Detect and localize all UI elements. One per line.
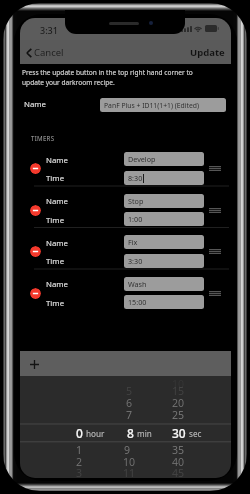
- staticText: Name: [46, 279, 68, 290]
- staticText: 6: [126, 396, 133, 410]
- staticText: 45: [172, 466, 185, 478]
- staticText: 5: [126, 384, 133, 398]
- button[interactable]: Delete Fix: [30, 246, 41, 257]
- button[interactable]: Cancel: [22, 43, 72, 62]
- staticText: min: [137, 428, 152, 439]
- staticText: Develop: [128, 154, 156, 164]
- staticText: 15:00: [128, 297, 147, 307]
- button[interactable]: 8: [127, 424, 152, 441]
- button[interactable]: Reorder Wash: [206, 286, 223, 300]
- staticText: 3:30: [128, 256, 143, 266]
- staticText: 3:31: [40, 24, 58, 36]
- staticText: Time: [46, 256, 65, 267]
- staticText: Stop: [128, 196, 144, 206]
- staticText: 35: [172, 443, 185, 457]
- button[interactable]: 30: [172, 424, 202, 441]
- button[interactable]: Reorder Develop: [206, 161, 223, 175]
- staticText: Name: [46, 196, 68, 207]
- staticText: Time: [46, 173, 65, 184]
- staticText: 40: [172, 455, 185, 469]
- staticText: 10: [172, 377, 185, 391]
- staticText: 11: [123, 466, 136, 478]
- staticText: Name: [46, 155, 68, 166]
- staticText: 8: [127, 425, 134, 441]
- staticText: 15: [172, 384, 185, 398]
- button[interactable]: Update: [185, 43, 231, 62]
- staticText: 20: [172, 396, 185, 410]
- staticText: Wash: [128, 279, 147, 289]
- button[interactable]: Develop: [124, 152, 204, 166]
- staticText: 10: [123, 455, 136, 469]
- staticText: 8:30: [128, 173, 143, 183]
- button[interactable]: Fix: [124, 235, 204, 249]
- staticText: 9: [124, 443, 131, 457]
- button[interactable]: Reorder Stop: [206, 203, 223, 217]
- button[interactable]: Delete Develop: [30, 163, 41, 174]
- staticText: 1: [76, 443, 83, 457]
- staticText: TIMERS: [31, 134, 55, 142]
- staticText: 2: [76, 455, 83, 469]
- staticText: 3: [76, 466, 83, 478]
- staticText: 7: [126, 408, 133, 422]
- button[interactable]: Delete Stop: [30, 205, 41, 216]
- button[interactable]: Wash: [124, 277, 204, 291]
- button[interactable]: 1:00: [124, 212, 204, 226]
- staticText: Update: [190, 46, 225, 59]
- button[interactable]: Add timer: [20, 351, 231, 377]
- staticText: Press the update button in the top right…: [22, 68, 210, 87]
- staticText: Cancel: [34, 46, 64, 59]
- staticText: 1:00: [128, 214, 143, 224]
- staticText: PanF Plus + ID11(1+1) (Edited): [104, 101, 199, 110]
- staticText: Name: [24, 99, 46, 110]
- button[interactable]: Reorder Fix: [206, 244, 223, 258]
- staticText: sec: [189, 428, 202, 439]
- button[interactable]: Stop: [124, 194, 204, 208]
- staticText: Name: [46, 238, 68, 249]
- button[interactable]: Delete Wash: [30, 288, 41, 299]
- button[interactable]: PanF Plus + ID11(1+1) (Edited): [100, 98, 226, 112]
- staticText: Fix: [128, 237, 138, 247]
- button[interactable]: 0: [76, 424, 105, 441]
- staticText: Time: [46, 215, 65, 226]
- button[interactable]: 15:00: [124, 295, 204, 309]
- staticText: hour: [86, 428, 105, 439]
- button[interactable]: 3:30: [124, 254, 204, 268]
- staticText: 0: [76, 425, 83, 441]
- staticText: 30: [172, 425, 186, 441]
- button[interactable]: 8:30: [124, 171, 204, 185]
- staticText: 25: [172, 408, 185, 422]
- staticText: Time: [46, 298, 65, 309]
